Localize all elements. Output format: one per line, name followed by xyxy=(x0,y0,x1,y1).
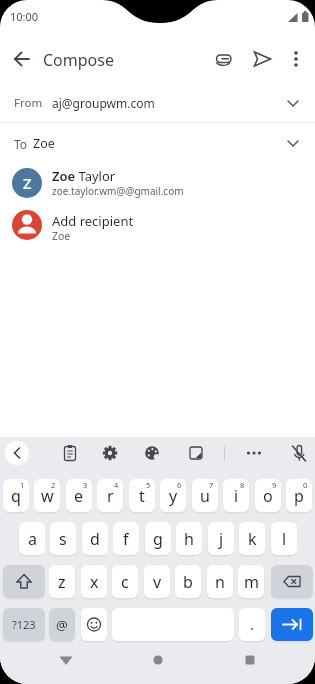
button[interactable] xyxy=(208,43,240,75)
staticText: g xyxy=(153,528,163,550)
button[interactable]: o xyxy=(255,479,281,512)
button[interactable] xyxy=(271,608,313,641)
staticText: aj@groupwm.com xyxy=(52,95,155,111)
staticText: r xyxy=(107,485,114,507)
staticText: f xyxy=(123,528,129,550)
button[interactable]: g xyxy=(145,522,171,555)
button[interactable]: j xyxy=(208,522,234,555)
button[interactable] xyxy=(287,441,311,465)
button[interactable]: z xyxy=(49,565,75,598)
staticText: @ xyxy=(56,616,68,634)
button[interactable] xyxy=(81,608,107,641)
staticText: o xyxy=(263,485,273,507)
staticText: Z xyxy=(23,173,32,193)
staticText: Compose xyxy=(43,49,114,71)
staticText: 6 xyxy=(177,480,182,490)
staticText: Add recipient xyxy=(52,212,134,230)
button[interactable]: m xyxy=(238,565,264,598)
button[interactable]: From xyxy=(0,84,315,122)
staticText: k xyxy=(248,528,257,550)
button[interactable]: Add recipient xyxy=(0,205,315,246)
button[interactable] xyxy=(140,441,164,465)
button[interactable]: a xyxy=(19,522,45,555)
staticText: t xyxy=(139,485,145,507)
staticText: 7 xyxy=(209,480,214,490)
button[interactable]: k xyxy=(239,522,265,555)
button[interactable]: s xyxy=(50,522,76,555)
staticText: 8 xyxy=(240,480,245,490)
staticText: j xyxy=(219,528,224,550)
button[interactable]: @ xyxy=(49,608,75,641)
staticText: v xyxy=(153,571,162,593)
button[interactable] xyxy=(242,441,266,465)
button[interactable]: Z xyxy=(0,163,315,204)
button[interactable] xyxy=(236,646,264,674)
button[interactable]: f xyxy=(113,522,139,555)
button[interactable]: i xyxy=(223,479,249,512)
button[interactable] xyxy=(58,441,82,465)
staticText: n xyxy=(215,571,225,593)
staticText: u xyxy=(200,485,210,507)
button[interactable] xyxy=(184,441,208,465)
staticText: 9 xyxy=(272,480,277,490)
staticText: e xyxy=(74,485,84,507)
button[interactable]: l xyxy=(271,522,297,555)
staticText: l xyxy=(282,528,287,550)
staticText: z xyxy=(58,571,66,593)
staticText: 3 xyxy=(83,480,88,490)
staticText: 5 xyxy=(146,480,151,490)
staticText: zoe.taylor.wm@@gmail.com xyxy=(52,184,184,198)
button[interactable]: q xyxy=(3,479,29,512)
button[interactable]: p xyxy=(286,479,312,512)
button[interactable]: x xyxy=(81,565,107,598)
staticText: w xyxy=(41,485,54,507)
staticText: s xyxy=(59,528,67,550)
button[interactable]: t xyxy=(129,479,155,512)
button[interactable]: y xyxy=(160,479,186,512)
button[interactable] xyxy=(281,43,311,75)
staticText: i xyxy=(234,485,239,507)
staticText: 10:00 xyxy=(10,9,39,24)
button[interactable] xyxy=(5,441,29,465)
button[interactable] xyxy=(144,646,172,674)
staticText: y xyxy=(169,485,178,507)
button[interactable]: e xyxy=(66,479,92,512)
staticText: p xyxy=(294,485,304,507)
staticText: h xyxy=(184,528,194,550)
staticText: 1 xyxy=(20,480,25,490)
button[interactable]: To xyxy=(0,123,315,162)
staticText: Zoe xyxy=(33,135,55,152)
button[interactable]: d xyxy=(82,522,108,555)
staticText: b xyxy=(183,571,193,593)
button[interactable]: c xyxy=(112,565,138,598)
button[interactable]: ?123 xyxy=(3,608,45,641)
button[interactable]: r xyxy=(97,479,123,512)
staticText: x xyxy=(90,571,99,593)
button[interactable]: h xyxy=(176,522,202,555)
staticText: 4 xyxy=(114,480,119,490)
button[interactable] xyxy=(6,43,38,75)
staticText: ?123 xyxy=(12,617,36,632)
button[interactable]: . xyxy=(239,608,265,641)
button[interactable] xyxy=(52,646,80,674)
button[interactable] xyxy=(246,43,278,75)
staticText: c xyxy=(121,571,129,593)
button[interactable]: w xyxy=(34,479,60,512)
button[interactable] xyxy=(98,441,122,465)
staticText: Zoe Taylor xyxy=(52,167,116,185)
staticText: To xyxy=(14,136,28,152)
staticText: q xyxy=(11,485,21,507)
staticText: d xyxy=(90,528,100,550)
staticText: 0 xyxy=(303,480,308,490)
staticText: . xyxy=(250,615,254,634)
staticText: m xyxy=(244,571,259,593)
button[interactable] xyxy=(3,565,45,598)
button[interactable]: n xyxy=(207,565,233,598)
button[interactable]: b xyxy=(175,565,201,598)
button[interactable]: u xyxy=(192,479,218,512)
button[interactable]: v xyxy=(144,565,170,598)
staticText: a xyxy=(28,528,37,550)
button[interactable] xyxy=(271,565,313,598)
staticText: Zoe xyxy=(52,229,71,243)
